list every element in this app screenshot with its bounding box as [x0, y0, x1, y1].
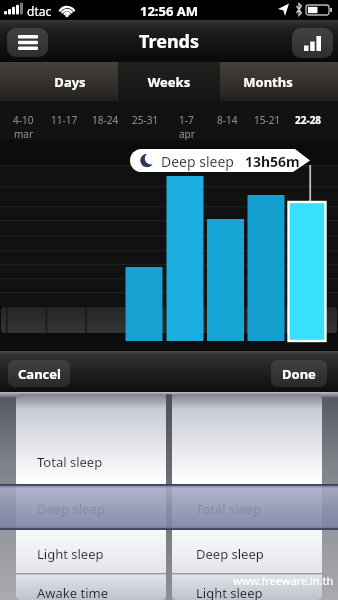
- staticText: Deep sleep: [196, 545, 264, 563]
- staticText: Months: [228, 73, 308, 91]
- staticText: Light sleep: [196, 584, 263, 600]
- staticText: Awake time: [37, 584, 109, 600]
- staticText: www.freeware.in.th: [233, 573, 334, 588]
- staticText: 22-28: [295, 113, 322, 127]
- button[interactable]: [220, 62, 338, 101]
- staticText: apr: [179, 127, 195, 141]
- staticText: 15-21: [254, 113, 281, 127]
- staticText: Done: [282, 365, 316, 383]
- staticText: Cancel: [18, 365, 61, 383]
- staticText: dtac: [27, 3, 52, 19]
- staticText: 25-31: [132, 113, 159, 127]
- button[interactable]: [0, 484, 338, 530]
- staticText: Total sleep: [196, 500, 262, 518]
- button[interactable]: Done: [271, 360, 327, 387]
- button[interactable]: Cancel: [8, 360, 70, 387]
- staticText: 18-24: [92, 113, 119, 127]
- staticText: 4-10: [13, 113, 34, 127]
- button[interactable]: [0, 62, 118, 101]
- staticText: Deep sleep: [37, 500, 105, 518]
- staticText: Trends: [139, 29, 200, 54]
- staticText: Deep sleep 13h56m: [161, 152, 300, 171]
- staticText: Days: [30, 73, 110, 91]
- staticText: 8-14: [217, 113, 238, 127]
- staticText: 11-17: [51, 113, 78, 127]
- staticText: mar: [14, 127, 34, 141]
- staticText: 12:56 AM: [0, 2, 338, 20]
- button[interactable]: [118, 62, 220, 101]
- button[interactable]: [16, 394, 166, 600]
- button[interactable]: [172, 394, 322, 600]
- button[interactable]: [292, 28, 333, 58]
- staticText: Light sleep: [37, 545, 104, 563]
- button[interactable]: [7, 28, 48, 57]
- staticText: 1-7: [179, 113, 194, 127]
- staticText: Total sleep: [37, 453, 103, 471]
- staticText: Weeks: [129, 73, 209, 91]
